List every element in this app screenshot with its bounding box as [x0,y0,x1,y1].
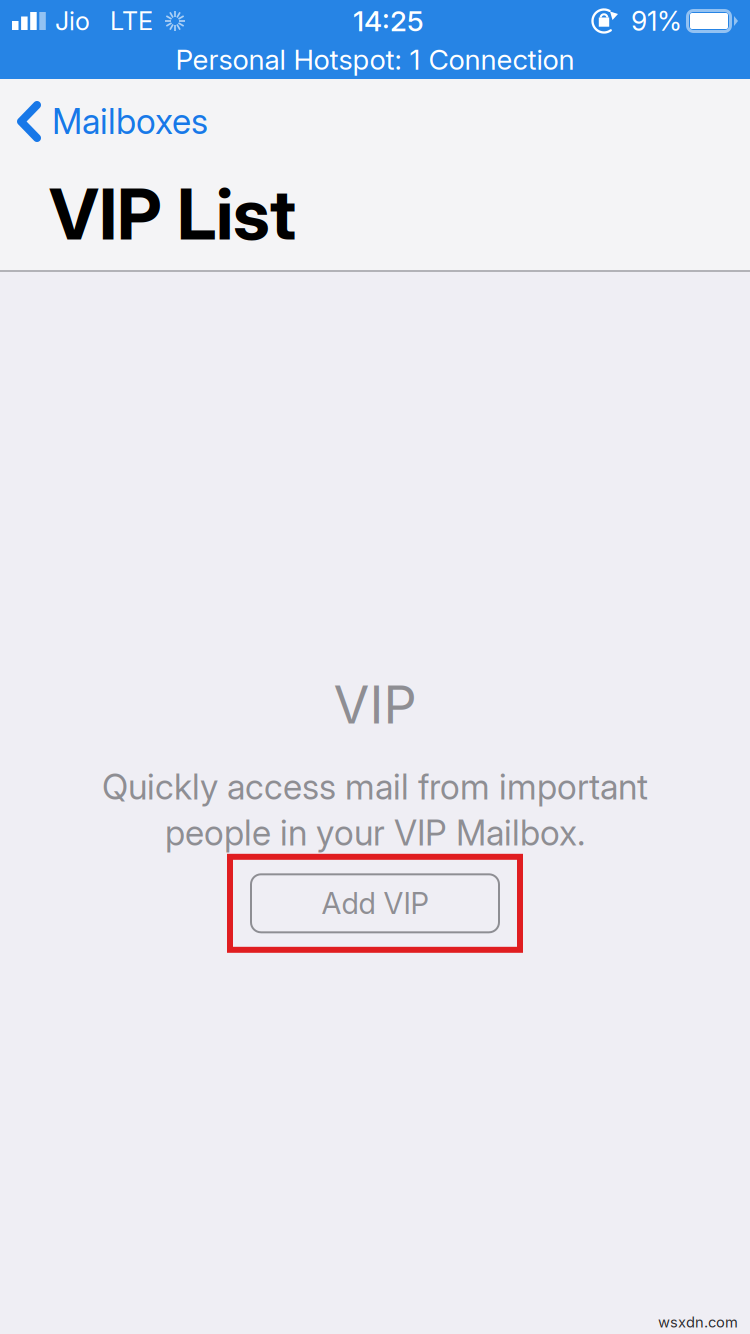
staticText: wsxdn.com [658,1313,738,1331]
staticText: people in your VIP Mailbox. [165,812,585,854]
staticText: VIP List [49,171,296,256]
staticText: Personal Hotspot: 1 Connection [175,43,574,76]
staticText: 91% [631,5,682,37]
staticText: Quickly access mail from important [102,766,648,808]
staticText: LTE [110,6,153,36]
staticText: Jio [55,6,90,36]
staticText: Mailboxes [52,100,208,142]
button[interactable]: Add VIP [251,874,499,932]
staticText: Add VIP [321,886,428,921]
button[interactable]: Mailboxes [0,79,208,145]
staticText: 14:25 [353,4,424,38]
staticText: VIP [333,673,416,736]
